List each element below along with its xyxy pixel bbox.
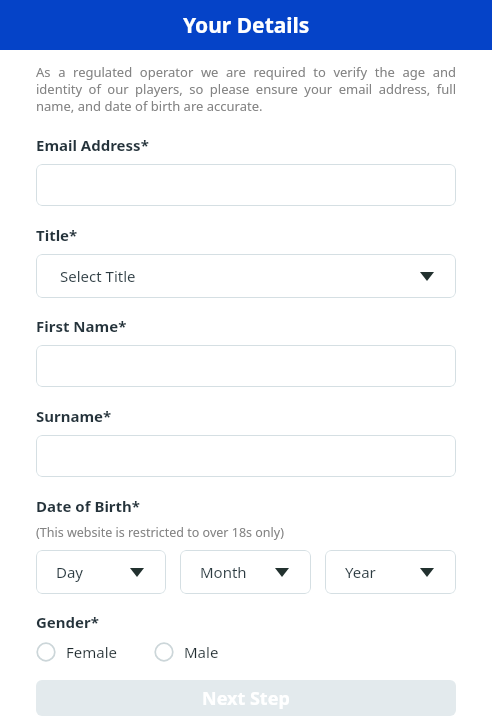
button[interactable]: Month: [180, 550, 311, 594]
staticText: (This website is restricted to over 18s …: [36, 524, 284, 541]
button[interactable]: First Name: [36, 345, 456, 387]
staticText: Year: [345, 562, 376, 582]
staticText: Next Step: [202, 686, 290, 711]
button[interactable]: Male: [154, 642, 219, 662]
staticText: Date of Birth*: [36, 496, 140, 516]
staticText: Title*: [36, 225, 78, 245]
button[interactable]: Surname: [36, 435, 456, 477]
staticText: Select Title: [60, 266, 136, 286]
staticText: Day: [56, 562, 84, 582]
staticText: Gender*: [36, 612, 99, 632]
button[interactable]: Year: [325, 550, 456, 594]
button[interactable]: Day: [36, 550, 166, 594]
button[interactable]: Email Address: [36, 164, 456, 206]
staticText: Your Details: [183, 11, 310, 40]
button[interactable]: Next Step: [36, 680, 456, 716]
staticText: Month: [200, 562, 247, 582]
button[interactable]: Select Title: [36, 254, 456, 298]
staticText: As a regulated operator we are required …: [36, 63, 456, 115]
staticText: Male: [184, 642, 219, 662]
staticText: First Name*: [36, 316, 127, 336]
staticText: Female: [66, 642, 118, 662]
staticText: Surname*: [36, 406, 112, 426]
button[interactable]: Female: [36, 642, 118, 662]
staticText: Email Address*: [36, 135, 149, 155]
